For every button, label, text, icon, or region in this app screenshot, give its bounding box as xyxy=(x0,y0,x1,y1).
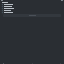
button[interactable]: Item two xyxy=(2,5,62,7)
button[interactable]: Search xyxy=(31,62,34,64)
button[interactable]: Item five xyxy=(2,11,62,13)
button[interactable]: Item one xyxy=(2,3,62,5)
button[interactable]: Item four xyxy=(2,9,62,11)
button[interactable]: Item three xyxy=(2,7,62,9)
button[interactable]: Home xyxy=(2,62,5,64)
button[interactable]: Primary action card xyxy=(3,14,61,17)
button[interactable]: Profile xyxy=(59,62,62,64)
